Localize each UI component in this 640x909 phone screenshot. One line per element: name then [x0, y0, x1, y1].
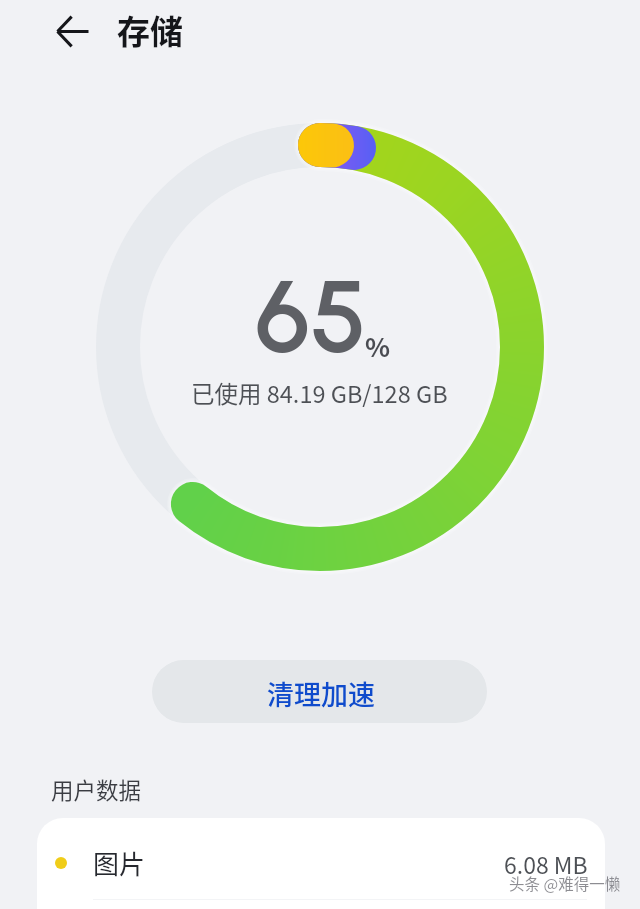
staticText: 用户数据 [51, 773, 142, 806]
staticText: 图片 [93, 844, 146, 882]
button[interactable]: 图片 [37, 818, 605, 909]
staticText: 头条 @难得一懒 [509, 872, 621, 894]
staticText: 存储 [117, 6, 183, 54]
staticText: 6.08 MB [504, 847, 588, 880]
button[interactable]: 清理加速 [152, 660, 487, 723]
button[interactable]: Back [44, 2, 102, 60]
staticText: 65 [255, 256, 368, 377]
staticText: % [365, 327, 391, 365]
staticText: 已使用 84.19 GB/128 GB [191, 376, 448, 410]
staticText: 清理加速 [267, 674, 375, 713]
